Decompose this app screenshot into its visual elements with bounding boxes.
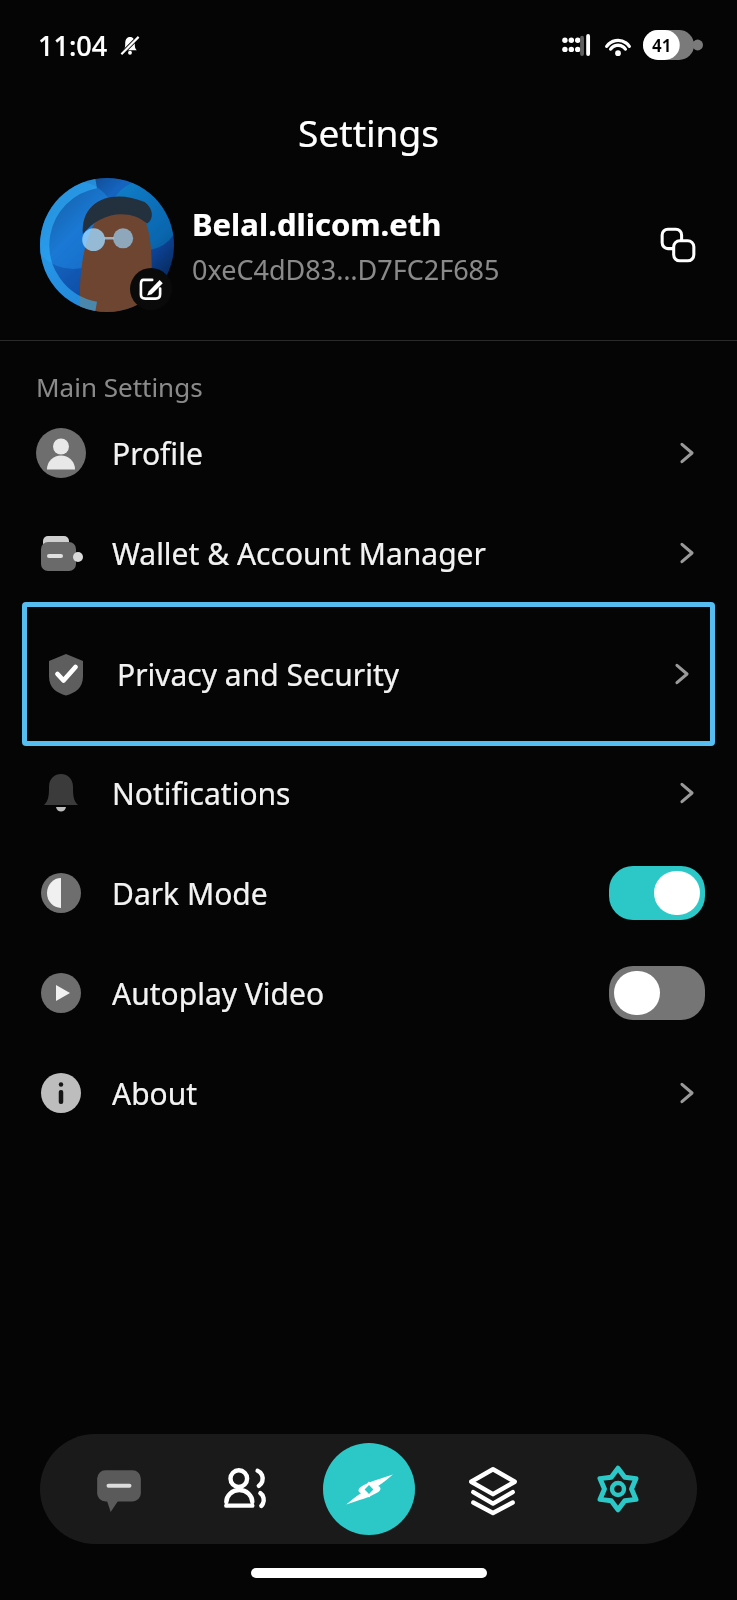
button[interactable]: Privacy and Security <box>27 607 710 741</box>
button[interactable]: Messages <box>73 1443 165 1535</box>
staticText: 0xeC4dD83…D7FC2F685 <box>192 251 500 288</box>
staticText: Autoplay Video <box>112 973 609 1014</box>
button[interactable]: Profile <box>0 424 737 482</box>
staticText: Belal.dlicom.eth <box>192 203 442 245</box>
staticText: About <box>112 1073 669 1114</box>
button[interactable] <box>609 966 705 1020</box>
staticText: Notifications <box>112 773 669 814</box>
button[interactable]: Copy address <box>649 216 707 274</box>
button[interactable]: Settings <box>572 1443 664 1535</box>
button[interactable]: Dark Mode <box>0 864 737 922</box>
staticText: Privacy and Security <box>117 654 664 695</box>
button[interactable]: Feed <box>447 1443 539 1535</box>
staticText: Wallet & Account Manager <box>112 533 669 574</box>
button[interactable] <box>609 866 705 920</box>
button[interactable]: Contacts <box>198 1443 290 1535</box>
staticText: 11:04 <box>38 27 108 64</box>
button[interactable]: Notifications <box>0 764 737 822</box>
staticText: Dark Mode <box>112 873 609 914</box>
staticText: Main Settings <box>36 369 203 404</box>
staticText: Profile <box>112 433 669 474</box>
button[interactable]: About <box>0 1064 737 1122</box>
staticText: 41 <box>652 34 672 57</box>
button[interactable]: Edit profile picture <box>130 268 172 310</box>
button[interactable]: Home <box>323 1443 415 1535</box>
button[interactable]: Autoplay Video <box>0 964 737 1022</box>
button[interactable]: Wallet & Account Manager <box>0 524 737 582</box>
staticText: Settings <box>298 107 439 157</box>
